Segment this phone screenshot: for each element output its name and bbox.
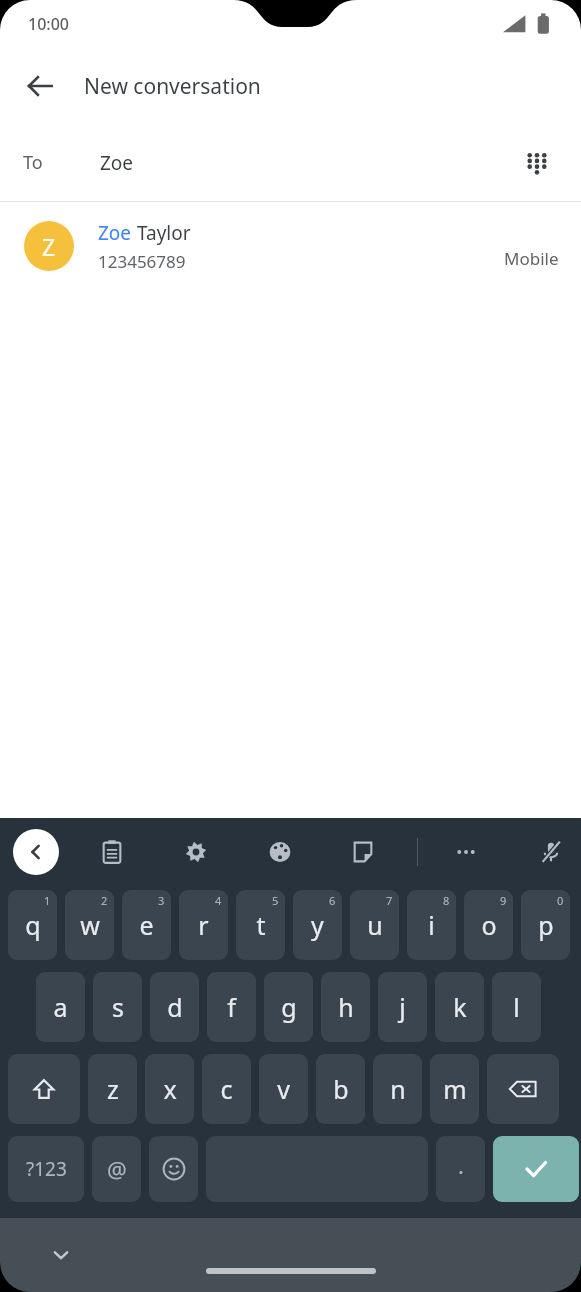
staticText: y bbox=[311, 908, 324, 942]
button[interactable]: f bbox=[207, 972, 256, 1042]
button[interactable]: j bbox=[378, 972, 427, 1042]
button[interactable]: x bbox=[145, 1054, 194, 1124]
staticText: New conversation bbox=[84, 72, 261, 101]
button[interactable]: Home bbox=[206, 1268, 376, 1274]
button[interactable]: a bbox=[36, 972, 85, 1042]
staticText: To bbox=[23, 150, 43, 175]
staticText: z bbox=[107, 1072, 119, 1106]
staticText: @ bbox=[107, 1154, 127, 1184]
button[interactable]: Backspace bbox=[487, 1054, 559, 1124]
button[interactable]: Keyboard tool bbox=[528, 829, 574, 875]
staticText: Taylor bbox=[132, 220, 191, 246]
staticText: 3 bbox=[158, 893, 165, 908]
staticText: 4 bbox=[215, 893, 222, 908]
staticText: Z bbox=[42, 231, 56, 262]
button[interactable]: w bbox=[65, 890, 114, 960]
button[interactable]: Back bbox=[16, 62, 64, 110]
button[interactable]: @ bbox=[92, 1136, 141, 1202]
staticText: 1 bbox=[44, 893, 51, 908]
button[interactable]: k bbox=[435, 972, 484, 1042]
button[interactable]: Close toolbar bbox=[13, 829, 59, 875]
button[interactable]: h bbox=[321, 972, 370, 1042]
button[interactable]: Shift bbox=[8, 1054, 80, 1124]
button[interactable]: i bbox=[407, 890, 456, 960]
button[interactable]: To bbox=[0, 124, 581, 201]
button[interactable]: p bbox=[521, 890, 570, 960]
staticText: d bbox=[167, 990, 183, 1024]
button[interactable]: Dialpad bbox=[513, 139, 561, 187]
button[interactable]: Keyboard tool bbox=[173, 829, 219, 875]
staticText: j bbox=[399, 990, 406, 1024]
staticText: c bbox=[220, 1072, 233, 1106]
staticText: 2 bbox=[101, 893, 108, 908]
staticText: o bbox=[481, 908, 497, 942]
staticText: t bbox=[256, 908, 266, 942]
staticText: ?123 bbox=[26, 1156, 67, 1182]
button[interactable]: o bbox=[464, 890, 513, 960]
staticText: p bbox=[538, 908, 554, 942]
button[interactable]: b bbox=[316, 1054, 365, 1124]
staticText: . bbox=[458, 1150, 464, 1180]
staticText: u bbox=[367, 908, 383, 942]
button[interactable]: z bbox=[88, 1054, 137, 1124]
button[interactable]: ?123 bbox=[8, 1136, 84, 1202]
button[interactable]: Keyboard tool bbox=[443, 829, 489, 875]
button[interactable]: c bbox=[202, 1054, 251, 1124]
staticText: a bbox=[53, 990, 68, 1024]
button[interactable]: l bbox=[492, 972, 541, 1042]
button[interactable]: r bbox=[179, 890, 228, 960]
staticText: x bbox=[163, 1072, 177, 1106]
button[interactable]: Hide keyboard bbox=[40, 1234, 82, 1276]
staticText: 9 bbox=[500, 893, 507, 908]
staticText: v bbox=[277, 1072, 290, 1106]
button[interactable]: Emoji bbox=[149, 1136, 198, 1202]
staticText: Mobile bbox=[504, 247, 559, 270]
staticText: 0 bbox=[557, 893, 564, 908]
staticText: i bbox=[428, 908, 435, 942]
button[interactable]: u bbox=[350, 890, 399, 960]
staticText: b bbox=[333, 1072, 349, 1106]
staticText: e bbox=[139, 908, 154, 942]
button[interactable]: . bbox=[436, 1136, 485, 1202]
button[interactable]: m bbox=[430, 1054, 479, 1124]
staticText: f bbox=[227, 990, 236, 1024]
staticText: 8 bbox=[443, 893, 450, 908]
staticText: q bbox=[25, 908, 41, 942]
staticText: l bbox=[513, 990, 520, 1024]
button[interactable]: s bbox=[93, 972, 142, 1042]
staticText: s bbox=[112, 990, 124, 1024]
button[interactable]: Keyboard tool bbox=[89, 829, 135, 875]
button[interactable]: Z bbox=[0, 202, 581, 290]
button[interactable]: n bbox=[373, 1054, 422, 1124]
staticText: k bbox=[453, 990, 467, 1024]
button[interactable]: Keyboard tool bbox=[340, 829, 386, 875]
staticText: 123456789 bbox=[98, 250, 186, 273]
button[interactable]: Keyboard tool bbox=[257, 829, 303, 875]
button[interactable]: q bbox=[8, 890, 57, 960]
staticText: n bbox=[390, 1072, 406, 1106]
button[interactable]: y bbox=[293, 890, 342, 960]
staticText: 7 bbox=[386, 893, 393, 908]
button[interactable]: Enter bbox=[493, 1136, 579, 1202]
staticText: 10:00 bbox=[28, 13, 69, 35]
button[interactable]: g bbox=[264, 972, 313, 1042]
staticText: 6 bbox=[329, 893, 336, 908]
button[interactable]: d bbox=[150, 972, 199, 1042]
staticText: Zoe bbox=[98, 220, 132, 246]
staticText: 5 bbox=[272, 893, 279, 908]
button[interactable]: v bbox=[259, 1054, 308, 1124]
staticText: Zoe bbox=[100, 150, 134, 176]
staticText: m bbox=[443, 1072, 467, 1106]
button[interactable]: t bbox=[236, 890, 285, 960]
button[interactable]: e bbox=[122, 890, 171, 960]
staticText: g bbox=[281, 990, 297, 1024]
staticText: w bbox=[80, 908, 100, 942]
staticText: r bbox=[198, 908, 209, 942]
staticText: h bbox=[338, 990, 354, 1024]
